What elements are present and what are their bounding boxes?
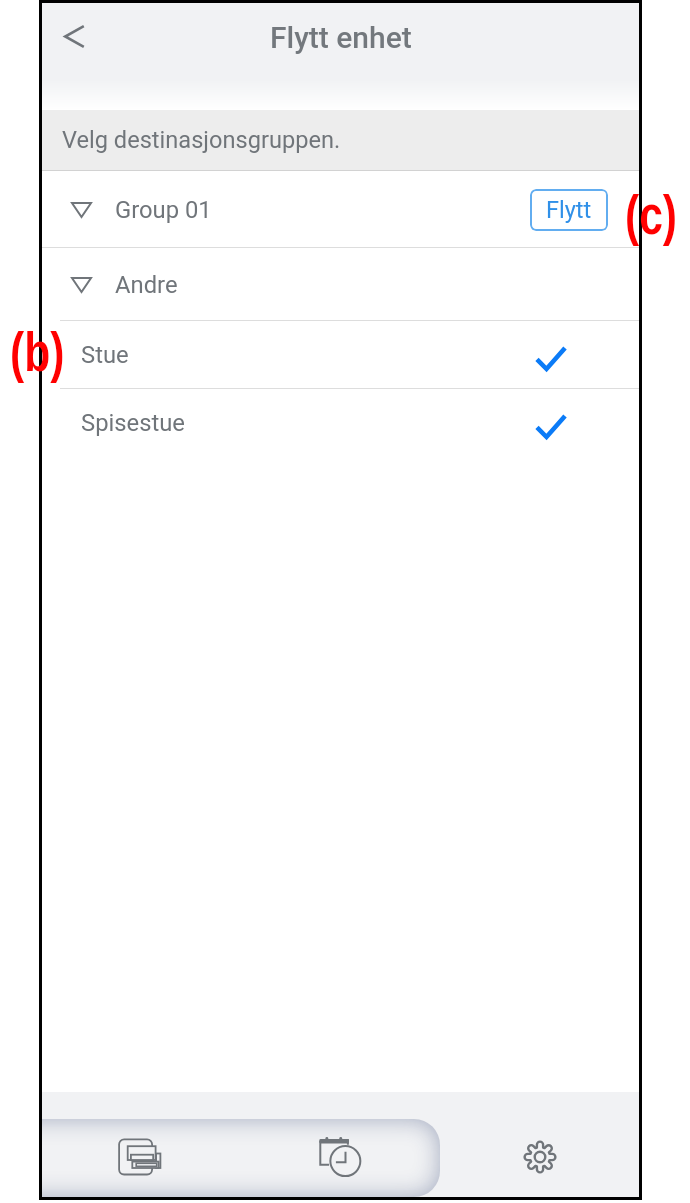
button[interactable]: Flytt xyxy=(530,189,608,231)
staticText: Velg destinasjonsgruppen. xyxy=(62,126,341,154)
staticText: Flytt enhet xyxy=(270,20,412,55)
button[interactable]: Spisestue xyxy=(42,389,639,457)
button[interactable]: Group 01 xyxy=(42,171,639,248)
staticText: Stue xyxy=(81,341,129,369)
button[interactable]: Schedule xyxy=(241,1119,440,1197)
staticText: (c) xyxy=(625,183,677,246)
button[interactable]: Andre xyxy=(42,248,639,321)
staticText: Spisestue xyxy=(81,409,185,437)
button[interactable]: Print xyxy=(42,1119,241,1197)
staticText: Group 01 xyxy=(115,196,212,224)
staticText: (b) xyxy=(10,320,65,383)
button[interactable]: Back xyxy=(46,8,102,64)
staticText: Andre xyxy=(115,271,178,299)
button[interactable]: Settings xyxy=(440,1119,639,1197)
button[interactable]: Stue xyxy=(42,321,639,389)
staticText: Flytt xyxy=(546,196,592,224)
